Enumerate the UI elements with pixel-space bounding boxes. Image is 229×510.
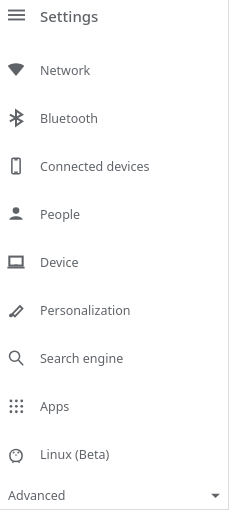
button[interactable]: Connected devices (0, 142, 229, 190)
staticText: People (40, 206, 81, 223)
staticText: Bluetooth (40, 110, 99, 127)
staticText: Apps (40, 398, 70, 415)
staticText: Device (40, 254, 79, 271)
button[interactable]: Personalization (0, 286, 229, 334)
button[interactable]: Search engine (0, 334, 229, 382)
staticText: Linux (Beta) (40, 446, 110, 463)
button[interactable]: Linux (Beta) (0, 430, 229, 478)
button[interactable]: Apps (0, 382, 229, 430)
staticText: Settings (40, 6, 99, 26)
staticText: Personalization (40, 302, 131, 319)
button[interactable]: People (0, 190, 229, 238)
staticText: Search engine (40, 350, 124, 367)
button[interactable]: Bluetooth (0, 94, 229, 142)
button[interactable]: Network (0, 46, 229, 94)
button[interactable]: Device (0, 238, 229, 286)
staticText: Connected devices (40, 158, 150, 175)
button[interactable]: Advanced (0, 482, 229, 509)
staticText: Network (40, 62, 91, 79)
staticText: Advanced (8, 487, 66, 504)
button[interactable]: Open navigation menu (8, 8, 25, 22)
